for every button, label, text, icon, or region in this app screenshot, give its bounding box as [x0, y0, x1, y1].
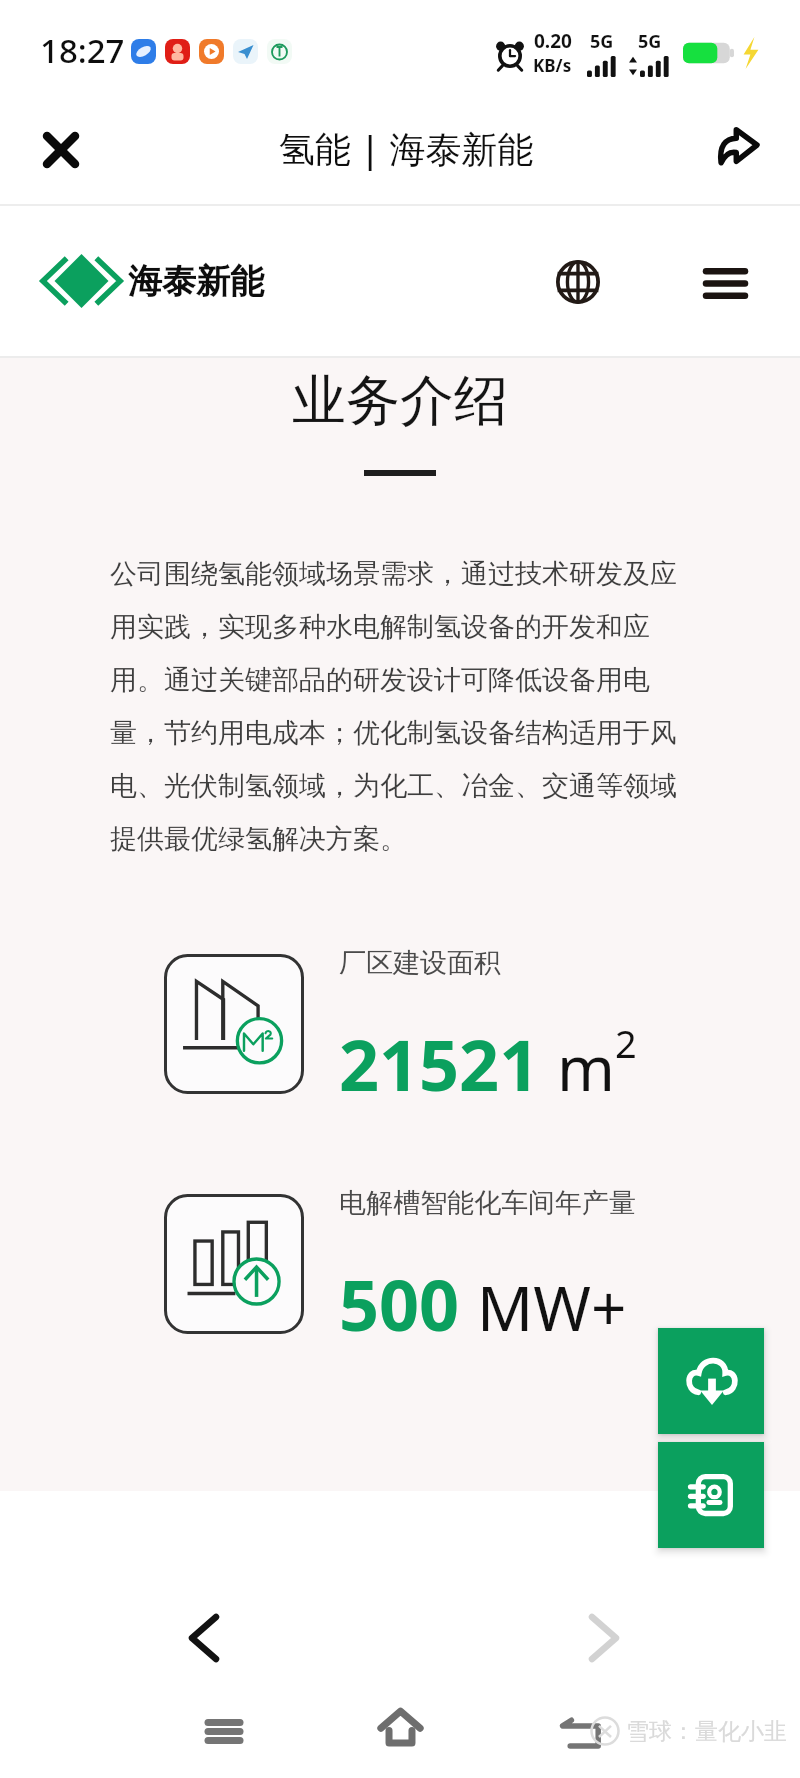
- staticText: 2: [615, 1017, 637, 1069]
- staticText: 电、光伏制氢领域，为化工、冶金、交通等领域: [110, 769, 677, 803]
- staticText: 雪球：量化小韭: [626, 1717, 787, 1746]
- staticText: 500: [339, 1256, 460, 1351]
- button[interactable]: Previous: [163, 1597, 245, 1679]
- staticText: KB/s: [533, 54, 572, 77]
- staticText: 量，节约用电成本；优化制氢设备结构适用于风: [110, 716, 677, 750]
- staticText: 电解槽智能化车间年产量: [339, 1186, 636, 1220]
- staticText: 用实践，实现多种水电解制氢设备的开发和应: [110, 610, 650, 644]
- staticText: 厂区建设面积: [339, 946, 501, 980]
- staticText: 海泰新能: [128, 260, 264, 303]
- button[interactable]: Close: [28, 117, 94, 183]
- button[interactable]: Home: [360, 1687, 440, 1767]
- staticText: 业务介绍: [292, 367, 508, 429]
- staticText: 5G: [590, 29, 614, 54]
- staticText: 氢能 | 海泰新能: [279, 124, 534, 173]
- button[interactable]: Recents: [184, 1691, 264, 1771]
- button[interactable]: Contacts: [658, 1442, 764, 1548]
- staticText: MW+: [477, 1265, 627, 1349]
- button[interactable]: Download: [658, 1328, 764, 1434]
- button[interactable]: Next: [563, 1597, 645, 1679]
- staticText: 用。通过关键部品的研发设计可降低设备用电: [110, 663, 650, 697]
- staticText: 0.20: [534, 28, 572, 54]
- button[interactable]: Back: [541, 1694, 621, 1774]
- staticText: 18:27: [40, 28, 125, 73]
- button[interactable]: Menu: [685, 243, 765, 323]
- staticText: 5G: [638, 29, 662, 54]
- staticText: 公司围绕氢能领域场景需求，通过技术研发及应: [110, 557, 677, 591]
- staticText: m: [557, 1025, 615, 1109]
- staticText: 21521: [339, 1016, 540, 1111]
- button[interactable]: Language: [538, 242, 618, 322]
- button[interactable]: 海泰新能: [36, 253, 264, 309]
- button[interactable]: Share: [704, 112, 772, 180]
- staticText: 提供最优绿氢解决方案。: [110, 822, 407, 856]
